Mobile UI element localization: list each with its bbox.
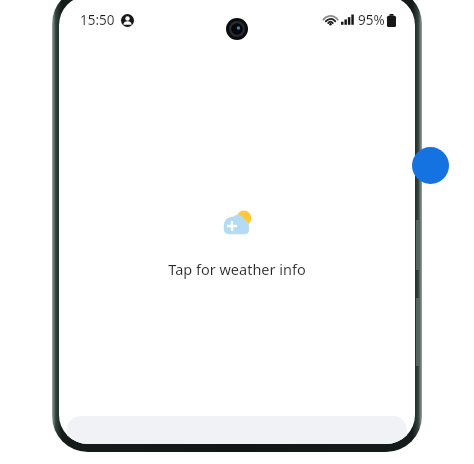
staticText: 15:50 <box>80 11 115 29</box>
staticText: 95% <box>358 11 385 29</box>
button[interactable]: Tap for weather info <box>148 196 326 289</box>
other: Pointer <box>412 147 449 184</box>
staticText: Tap for weather info <box>168 259 306 279</box>
